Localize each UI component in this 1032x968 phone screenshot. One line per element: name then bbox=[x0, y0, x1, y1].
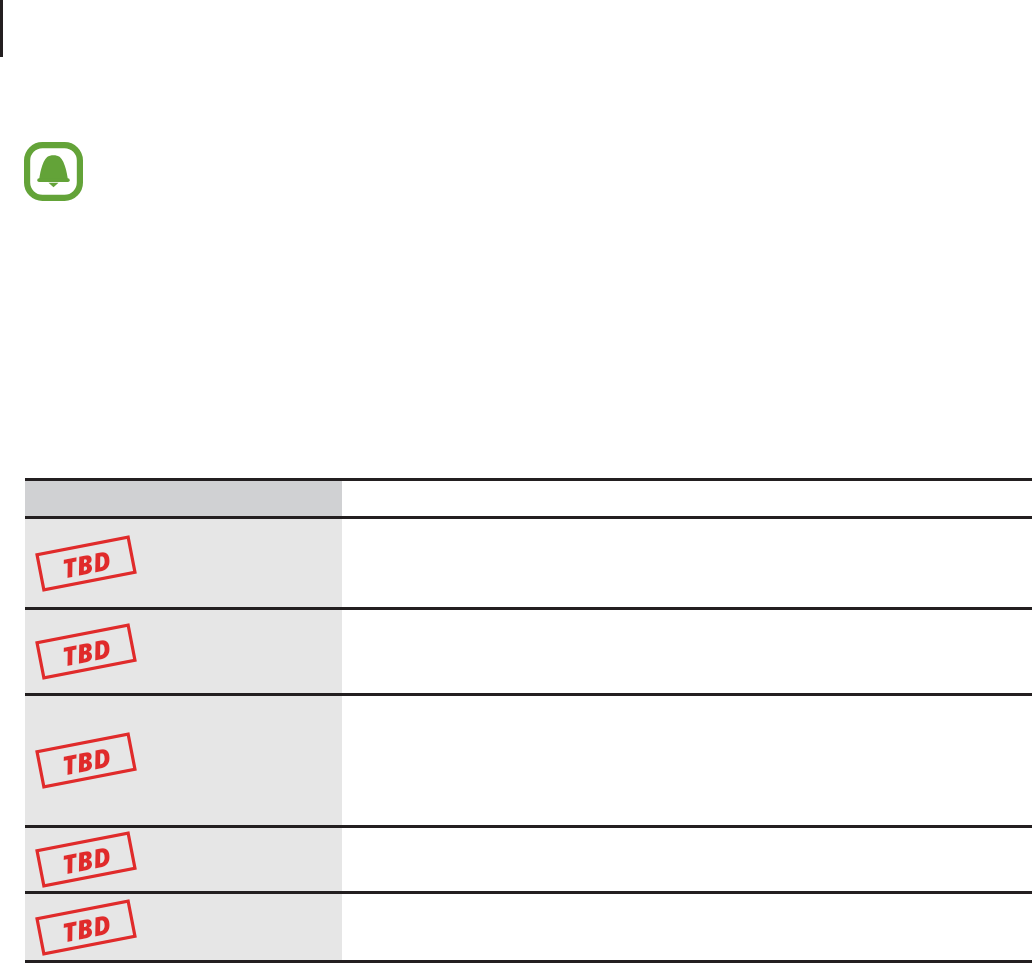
button[interactable]: TBD bbox=[25, 610, 1032, 693]
staticText: TBD bbox=[59, 838, 114, 881]
staticText: TBD bbox=[59, 906, 114, 949]
staticText: TBD bbox=[59, 739, 114, 782]
button[interactable]: TBD bbox=[25, 519, 1032, 607]
staticText: TBD bbox=[59, 542, 114, 585]
button[interactable]: TBD bbox=[25, 828, 1032, 891]
button[interactable]: TBD bbox=[25, 696, 1032, 825]
button[interactable]: Notifications bbox=[24, 142, 83, 201]
staticText: TBD bbox=[59, 630, 114, 673]
button[interactable]: TBD bbox=[25, 894, 1032, 960]
button[interactable] bbox=[25, 481, 1032, 516]
